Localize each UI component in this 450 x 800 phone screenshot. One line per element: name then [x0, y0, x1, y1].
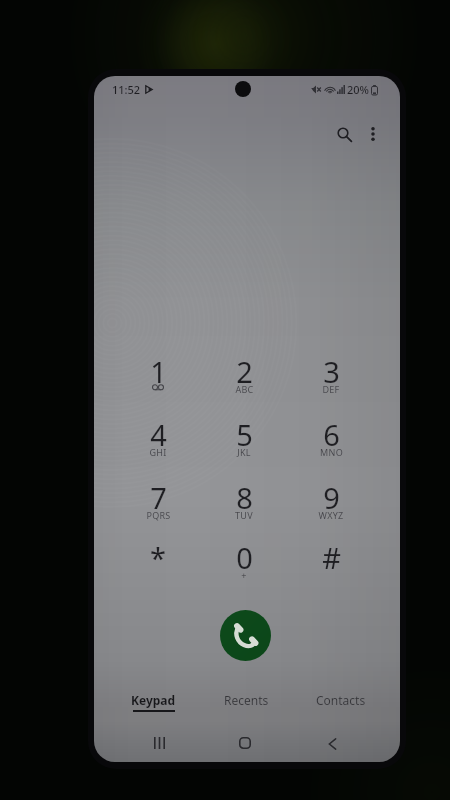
button[interactable]: 0 [208, 533, 280, 585]
staticText: * [150, 538, 166, 577]
staticText: TUV [235, 509, 253, 521]
button[interactable]: More options [358, 119, 388, 149]
staticText: 4 [150, 415, 167, 454]
staticText: Recents [224, 692, 269, 708]
button[interactable]: Recents [198, 692, 294, 732]
button[interactable]: 3 [295, 347, 367, 399]
button[interactable]: 7 [122, 473, 194, 525]
staticText: DEF [322, 383, 340, 395]
staticText: 11:52 [112, 82, 141, 97]
button[interactable]: Search [329, 119, 359, 149]
staticText: WXYZ [318, 509, 344, 521]
staticText: 0 [236, 538, 253, 577]
button[interactable]: Home [221, 723, 269, 762]
staticText: Contacts [316, 692, 366, 708]
button[interactable]: Call [220, 610, 271, 661]
button[interactable]: 4 [122, 410, 194, 462]
staticText: 6 [323, 415, 340, 454]
staticText: 8 [236, 478, 253, 517]
staticText: 7 [150, 478, 167, 517]
staticText: 20% [347, 82, 369, 97]
staticText: # [322, 538, 341, 577]
button[interactable]: # [295, 533, 367, 585]
staticText: 9 [323, 478, 340, 517]
button[interactable]: Keypad [105, 692, 201, 732]
staticText: 1 [150, 352, 167, 391]
button[interactable]: Contacts [293, 692, 389, 732]
button[interactable]: 8 [208, 473, 280, 525]
staticText: PQRS [146, 509, 171, 521]
staticText: + [241, 569, 247, 581]
staticText: MNO [320, 446, 343, 458]
staticText: 5 [236, 415, 253, 454]
button[interactable]: * [122, 533, 194, 585]
button[interactable]: 5 [208, 410, 280, 462]
button[interactable]: 1 [122, 347, 194, 399]
staticText: ABC [235, 383, 254, 395]
staticText: 3 [323, 352, 340, 391]
button[interactable]: 9 [295, 473, 367, 525]
staticText: 2 [236, 352, 253, 391]
staticText: Keypad [131, 692, 176, 708]
button[interactable]: Recent apps [135, 723, 183, 762]
button[interactable]: Back [308, 724, 356, 762]
button[interactable]: 2 [208, 347, 280, 399]
button[interactable]: 6 [295, 410, 367, 462]
staticText: GHI [149, 446, 167, 458]
staticText: JKL [237, 446, 251, 458]
